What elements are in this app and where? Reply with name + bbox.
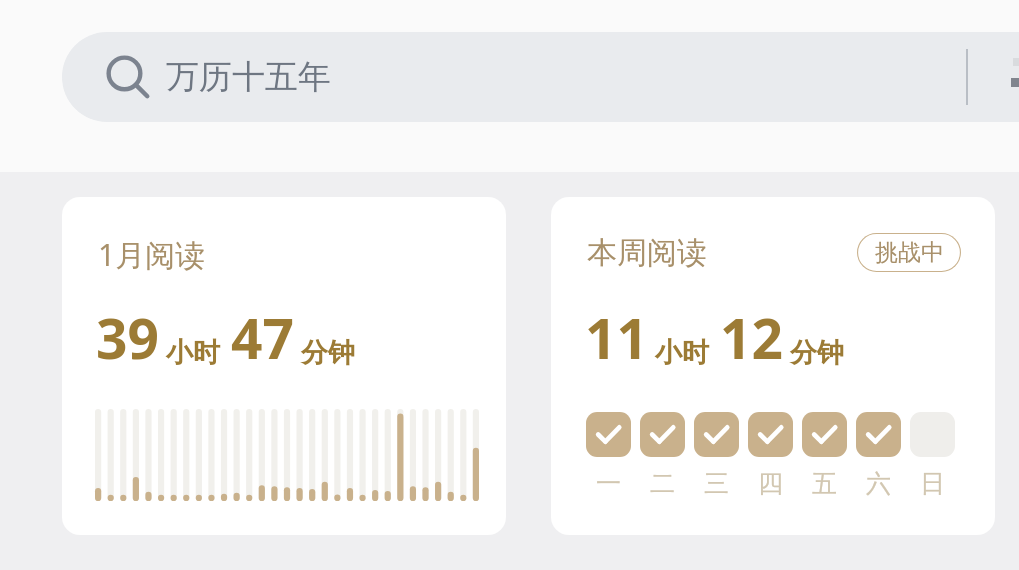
staticText: 一 — [596, 468, 621, 499]
staticText: 11 — [585, 300, 648, 375]
staticText: 万历十五年 — [166, 56, 331, 98]
button[interactable]: 六 — [856, 412, 901, 499]
staticText: 39 — [96, 300, 159, 375]
staticText: 分钟 — [790, 336, 844, 370]
staticText: 1月阅读 — [98, 234, 206, 275]
staticText: 挑战中 — [875, 238, 944, 267]
staticText: 12 — [720, 300, 783, 375]
button[interactable]: 五 — [802, 412, 847, 499]
staticText: 四 — [758, 468, 783, 499]
staticText: 分钟 — [301, 336, 355, 370]
button[interactable]: 1月阅读 — [62, 197, 506, 535]
staticText: 47 — [231, 300, 294, 375]
button[interactable]: 本周阅读 — [551, 197, 995, 535]
button[interactable]: 一 — [586, 412, 631, 499]
staticText: 三 — [704, 468, 729, 499]
button[interactable]: 二 — [640, 412, 685, 499]
staticText: 本周阅读 — [587, 234, 707, 272]
button[interactable]: 四 — [748, 412, 793, 499]
staticText: 日 — [920, 468, 945, 499]
staticText: 二 — [650, 468, 675, 499]
button[interactable]: 挑战中 — [857, 233, 961, 272]
staticText: 小时 — [166, 336, 220, 370]
staticText: 小时 — [655, 336, 709, 370]
button[interactable]: 万历十五年 — [62, 32, 1019, 122]
button[interactable]: 三 — [694, 412, 739, 499]
staticText: 五 — [812, 468, 837, 499]
button[interactable]: 日 — [910, 412, 955, 499]
staticText: 六 — [866, 468, 891, 499]
